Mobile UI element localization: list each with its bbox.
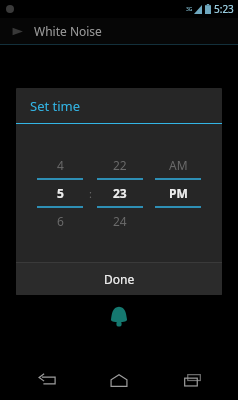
staticText: 5 [57,185,64,201]
staticText: 23 [113,185,127,201]
other: White Noise app icon [11,25,24,38]
staticText: AM [169,157,188,173]
staticText: 24 [113,213,127,229]
staticText: Set time [30,97,81,115]
staticText: PM [169,185,188,201]
button[interactable]: White Noise app icon [0,18,238,44]
button[interactable]: Done [16,263,222,295]
button[interactable]: Back [21,362,73,398]
other: Alarm [108,305,130,327]
button[interactable]: Recents [166,362,218,398]
staticText: : [89,186,92,201]
button[interactable]: 4 [37,152,83,234]
button[interactable]: Home [93,362,145,398]
staticText: White Noise [34,23,102,39]
button[interactable]: 22 [97,152,143,234]
staticText: 5:23 [214,2,234,16]
staticText: 6 [57,213,64,229]
button[interactable]: AM [155,152,201,234]
staticText: 3G [186,6,193,13]
staticText: 22 [113,157,127,173]
staticText: 4 [57,157,64,173]
staticText: Done [104,271,135,287]
